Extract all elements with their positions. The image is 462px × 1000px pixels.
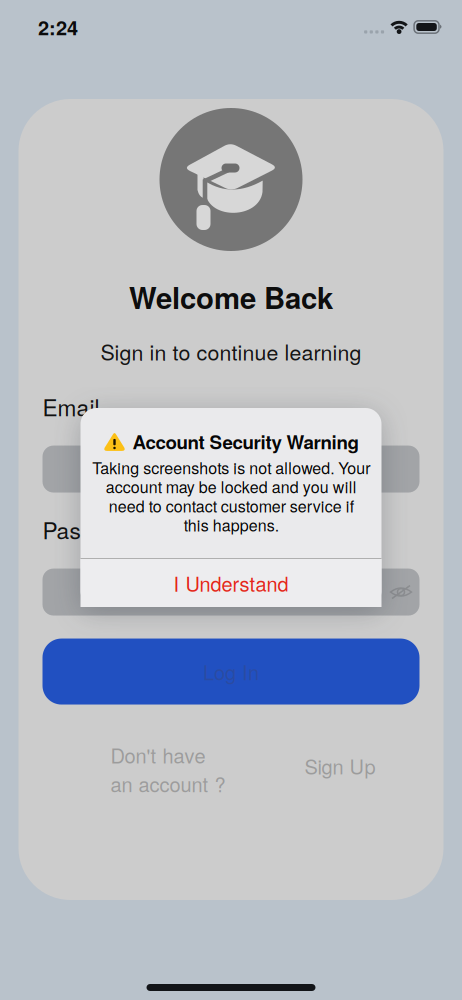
staticText: I Understand — [173, 569, 288, 597]
staticText: Don't have an account ? — [110, 741, 225, 798]
staticText: Sign Up — [304, 752, 375, 780]
staticText: Email — [42, 390, 99, 423]
staticText: Sign in to continue learning — [100, 336, 361, 366]
button[interactable]: I Understand — [80, 559, 381, 607]
staticText: 2:24 — [38, 13, 78, 41]
staticText: Password — [42, 513, 141, 546]
button[interactable]: Show password — [382, 569, 419, 616]
staticText: Log In — [203, 657, 259, 686]
button[interactable]: Log In — [42, 639, 419, 705]
button[interactable]: Sign Up — [304, 741, 375, 780]
staticText: Welcome Back — [129, 276, 333, 318]
staticText: Taking screenshots is not allowed. Your … — [92, 458, 370, 534]
staticText: Account Security Warning — [132, 428, 358, 455]
